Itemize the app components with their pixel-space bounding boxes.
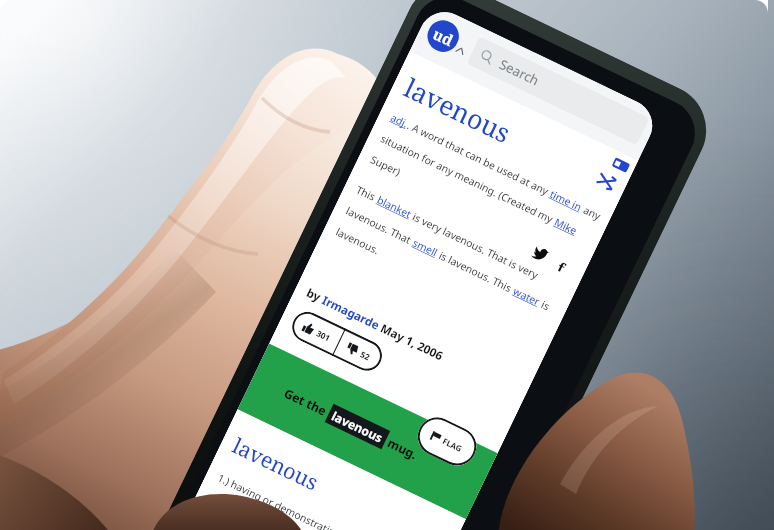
- button[interactable]: Mike: [552, 215, 580, 238]
- staticText: by: [304, 285, 326, 307]
- button[interactable]: Shuffle: [594, 168, 619, 194]
- staticText: is lavenous. This: [434, 247, 517, 297]
- button[interactable]: Share on Facebook: [553, 255, 572, 274]
- button[interactable]: FLAG: [411, 411, 483, 472]
- staticText: Irmagarde: [319, 292, 382, 334]
- staticText: is very lavenous. That is very: [408, 208, 541, 282]
- staticText: 2.) A s...: [206, 490, 246, 520]
- button[interactable]: Open tabs: [610, 153, 633, 176]
- staticText: Super): [368, 152, 404, 179]
- button[interactable]: time in: [548, 187, 585, 214]
- staticText: 52: [359, 348, 373, 363]
- button[interactable]: adj.: [388, 110, 411, 131]
- staticText: May 1, 2006: [375, 319, 446, 364]
- staticText: This: [354, 182, 381, 205]
- staticText: Search: [497, 55, 543, 90]
- staticText: ud: [430, 23, 457, 50]
- button[interactable]: water: [511, 284, 543, 309]
- staticText: Get the: [282, 384, 333, 420]
- staticText: . A word that can be used at any: [405, 118, 554, 199]
- button[interactable]: blanket: [375, 192, 414, 221]
- staticText: is: [537, 296, 553, 314]
- staticText: mug.: [382, 433, 420, 462]
- button[interactable]: Share on Twitter: [531, 243, 552, 263]
- staticText: 1.) having or demonstrating: [215, 470, 344, 530]
- staticText: lavenous: [228, 431, 324, 498]
- button[interactable]: Search: [466, 36, 650, 145]
- staticText: f: [556, 257, 569, 273]
- staticText: lavenous.: [334, 224, 382, 257]
- staticText: FLAG: [441, 435, 465, 454]
- staticText: 301: [315, 327, 332, 343]
- button[interactable]: ud: [422, 15, 464, 57]
- staticText: any: [579, 201, 603, 223]
- button[interactable]: Expand account menu: [455, 45, 466, 56]
- staticText: lavenous: [399, 69, 517, 150]
- staticText: lavenous. That: [344, 203, 417, 248]
- button[interactable]: 301: [287, 307, 387, 376]
- staticText: situation for any meaning. (Created my: [378, 131, 558, 227]
- staticText: lavenous: [329, 407, 386, 446]
- button[interactable]: smell: [410, 235, 440, 260]
